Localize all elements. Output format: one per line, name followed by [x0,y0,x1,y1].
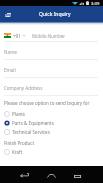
button[interactable]: Home [43,168,59,183]
button[interactable]: Plants [4,109,25,118]
button[interactable]: +91 [4,32,26,39]
button[interactable]: Recent apps [69,168,85,183]
staticText: 3:39 [91,1,100,7]
staticText: Email [4,67,16,73]
staticText: Mobile Number [32,33,66,39]
staticText: Kraft [12,149,23,155]
button[interactable]: Open navigation menu [2,9,13,20]
staticText: Quick Inquiry [39,11,71,18]
staticText: Technical Services [12,129,50,135]
button[interactable]: Technical Services [4,127,50,136]
staticText: Parts & Equipments [12,120,54,126]
button[interactable]: Kraft [4,147,23,156]
button[interactable]: Parts & Equipments [4,118,54,127]
staticText: +91 [13,33,21,39]
button[interactable]: Back [16,167,32,183]
staticText: Plants [12,111,25,117]
staticText: Company Address [4,85,43,91]
staticText: Finish Product [4,140,35,146]
staticText: Name [4,49,17,55]
staticText: Please choose option to send Inquiry for [4,100,90,106]
